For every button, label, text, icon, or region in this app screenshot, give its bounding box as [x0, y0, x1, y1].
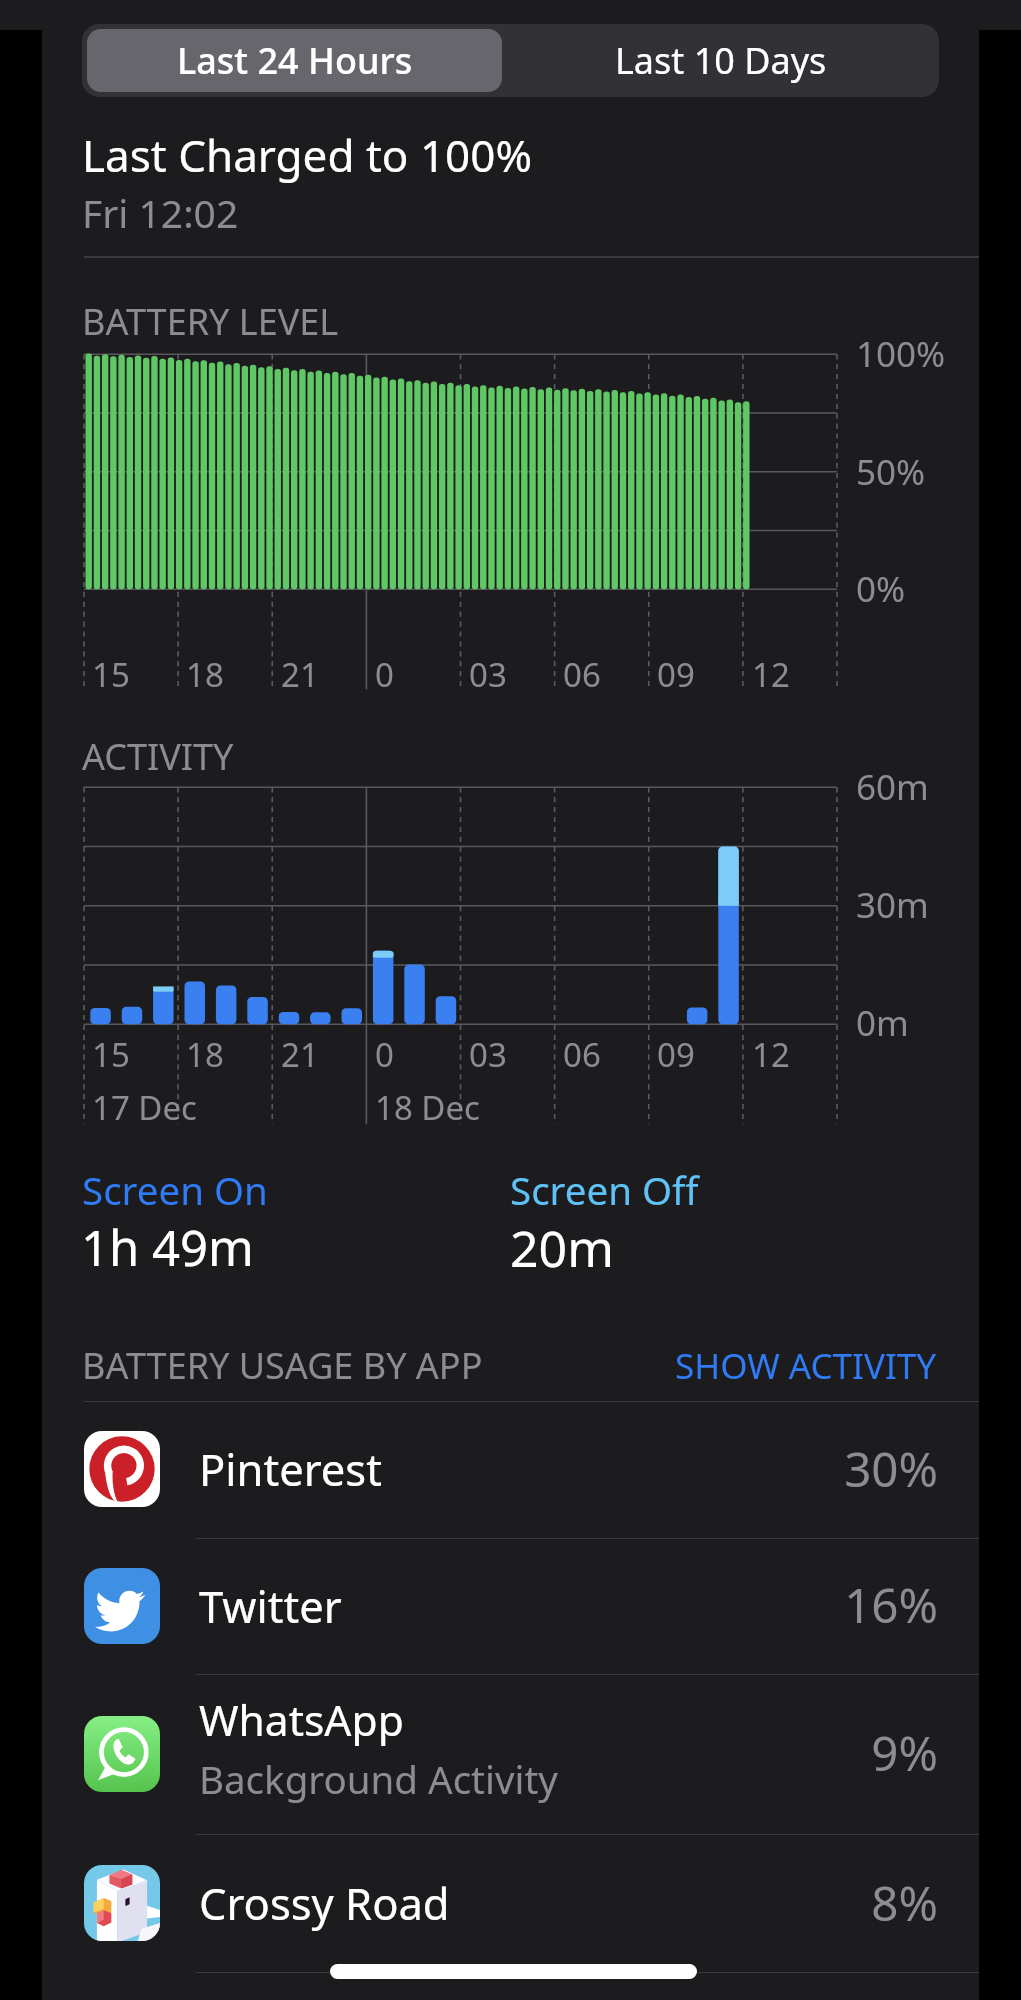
- button[interactable]: Pinterest: [42, 1401, 979, 1538]
- button[interactable]: Last 10 Days: [502, 24, 939, 97]
- staticText: 17 Dec: [92, 1085, 197, 1130]
- staticText: 18: [186, 652, 224, 697]
- button[interactable]: Twitter: [42, 1538, 979, 1674]
- staticText: 30m: [856, 881, 929, 929]
- staticText: 18 Dec: [375, 1085, 480, 1130]
- staticText: 09: [657, 652, 695, 697]
- staticText: BATTERY USAGE BY APP: [82, 1341, 483, 1390]
- staticText: SHOW ACTIVITY: [675, 1342, 937, 1390]
- staticText: 8%: [796, 1870, 938, 1935]
- staticText: Crossy Road: [199, 1873, 450, 1932]
- staticText: 18: [186, 1032, 224, 1077]
- staticText: 12: [752, 652, 790, 697]
- staticText: Screen On: [82, 1164, 268, 1216]
- staticText: BATTERY LEVEL: [82, 297, 339, 346]
- staticText: Last 10 Days: [615, 36, 827, 85]
- staticText: 12: [752, 1032, 790, 1077]
- staticText: 0: [375, 1032, 394, 1077]
- button[interactable]: SHOW ACTIVITY: [661, 1328, 951, 1404]
- staticText: 21: [281, 652, 319, 697]
- staticText: 0m: [856, 999, 909, 1047]
- staticText: 21: [281, 1032, 319, 1077]
- button[interactable]: Crossy Road: [42, 1834, 979, 1973]
- staticText: 03: [469, 1032, 507, 1077]
- staticText: 20m: [510, 1214, 614, 1282]
- staticText: Twitter: [199, 1576, 342, 1635]
- staticText: 09: [657, 1032, 695, 1077]
- staticText: 1h 49m: [81, 1214, 254, 1281]
- button[interactable]: WhatsApp: [42, 1674, 979, 1834]
- staticText: 03: [469, 652, 507, 697]
- staticText: Fri 12:02: [82, 186, 239, 239]
- staticText: 60m: [856, 763, 929, 811]
- staticText: Background Activity: [199, 1753, 558, 1805]
- staticText: Last Charged to 100%: [82, 125, 532, 185]
- staticText: 15: [92, 652, 130, 697]
- staticText: 15: [92, 1032, 130, 1077]
- staticText: ACTIVITY: [82, 732, 234, 781]
- staticText: 0%: [856, 565, 906, 613]
- staticText: 100%: [856, 330, 946, 378]
- staticText: 06: [563, 652, 601, 697]
- staticText: 06: [563, 1032, 601, 1077]
- staticText: Screen Off: [510, 1164, 699, 1216]
- staticText: 30%: [796, 1436, 938, 1501]
- staticText: Pinterest: [199, 1439, 382, 1498]
- staticText: 16%: [796, 1572, 938, 1637]
- staticText: 9%: [796, 1720, 938, 1785]
- staticText: 50%: [856, 448, 926, 496]
- staticText: WhatsApp: [199, 1691, 404, 1749]
- staticText: Last 24 Hours: [177, 36, 413, 85]
- staticText: 0: [375, 652, 394, 697]
- button[interactable]: Last 24 Hours: [87, 29, 502, 92]
